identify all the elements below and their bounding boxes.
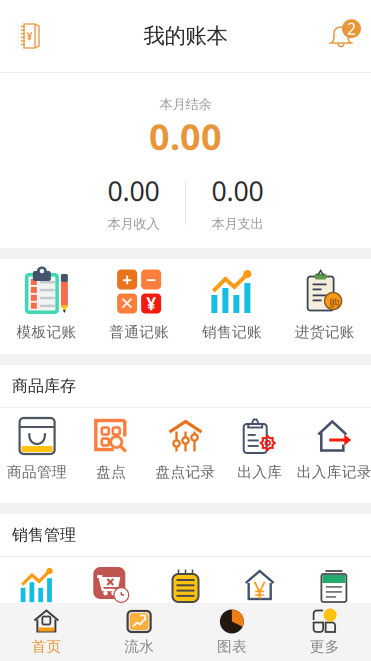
staticText: 流水账 (311, 612, 356, 630)
staticText: 盘点 (96, 463, 126, 481)
staticText: ¥ (146, 292, 156, 315)
button[interactable]: 通知 (315, 6, 367, 66)
staticText: 2 (347, 18, 356, 39)
button[interactable]: 账本 (4, 6, 56, 66)
staticText: 0.00 (211, 173, 263, 209)
button[interactable]: + (93, 269, 186, 354)
staticText: 模板记账 (16, 323, 76, 341)
staticText: 普通记账 (109, 323, 169, 341)
staticText: 本月收入 (107, 216, 159, 232)
button[interactable]: 盘点记录 (148, 418, 223, 503)
staticText: 购 (329, 296, 340, 310)
staticText: 0.00 (107, 173, 159, 209)
button[interactable]: 挂单 (74, 567, 148, 653)
staticText: ¥ (253, 575, 266, 605)
button[interactable]: 出入库记录 (297, 418, 371, 503)
staticText: 首页 (31, 637, 61, 655)
staticText: 盘点记录 (155, 463, 215, 481)
staticText: 本月支出 (211, 216, 263, 232)
button[interactable]: 流水 (93, 603, 186, 661)
button[interactable]: 销售记账 (185, 269, 278, 354)
button[interactable]: ¥ (223, 567, 297, 653)
staticText: ¥ (26, 29, 32, 43)
staticText: ✕ (120, 294, 135, 313)
button[interactable]: 出入库 (223, 418, 297, 503)
staticText: 商品库存 (12, 376, 76, 396)
staticText: 出入库记录 (297, 463, 371, 481)
staticText: 销售管理 (12, 525, 76, 545)
button[interactable]: 销售开单 (0, 567, 74, 653)
staticText: 进货记账 (295, 323, 355, 341)
button[interactable]: 购 (278, 269, 371, 354)
button[interactable]: 图表 (185, 603, 278, 661)
staticText: + (122, 268, 132, 291)
staticText: 本月结余 (159, 96, 211, 112)
button[interactable]: 更多 (278, 603, 371, 661)
staticText: 我的账本 (143, 23, 227, 49)
button[interactable]: 销售单 (148, 567, 223, 653)
staticText: 图表 (217, 637, 247, 655)
button[interactable]: 流水账 (297, 567, 371, 653)
button[interactable]: 模板记账 (0, 269, 93, 354)
button[interactable]: 商品管理 (0, 418, 74, 503)
staticText: 销售开单 (7, 612, 67, 630)
staticText: 更多 (310, 637, 340, 655)
staticText: − (146, 268, 156, 291)
button[interactable]: 盘点 (74, 418, 148, 503)
button[interactable]: 首页 (0, 603, 93, 661)
staticText: 0.00 (149, 112, 222, 160)
staticText: 出入库 (237, 463, 282, 481)
staticText: 流水 (124, 637, 154, 655)
staticText: 销售记账 (202, 323, 262, 341)
staticText: 商品管理 (7, 463, 67, 481)
